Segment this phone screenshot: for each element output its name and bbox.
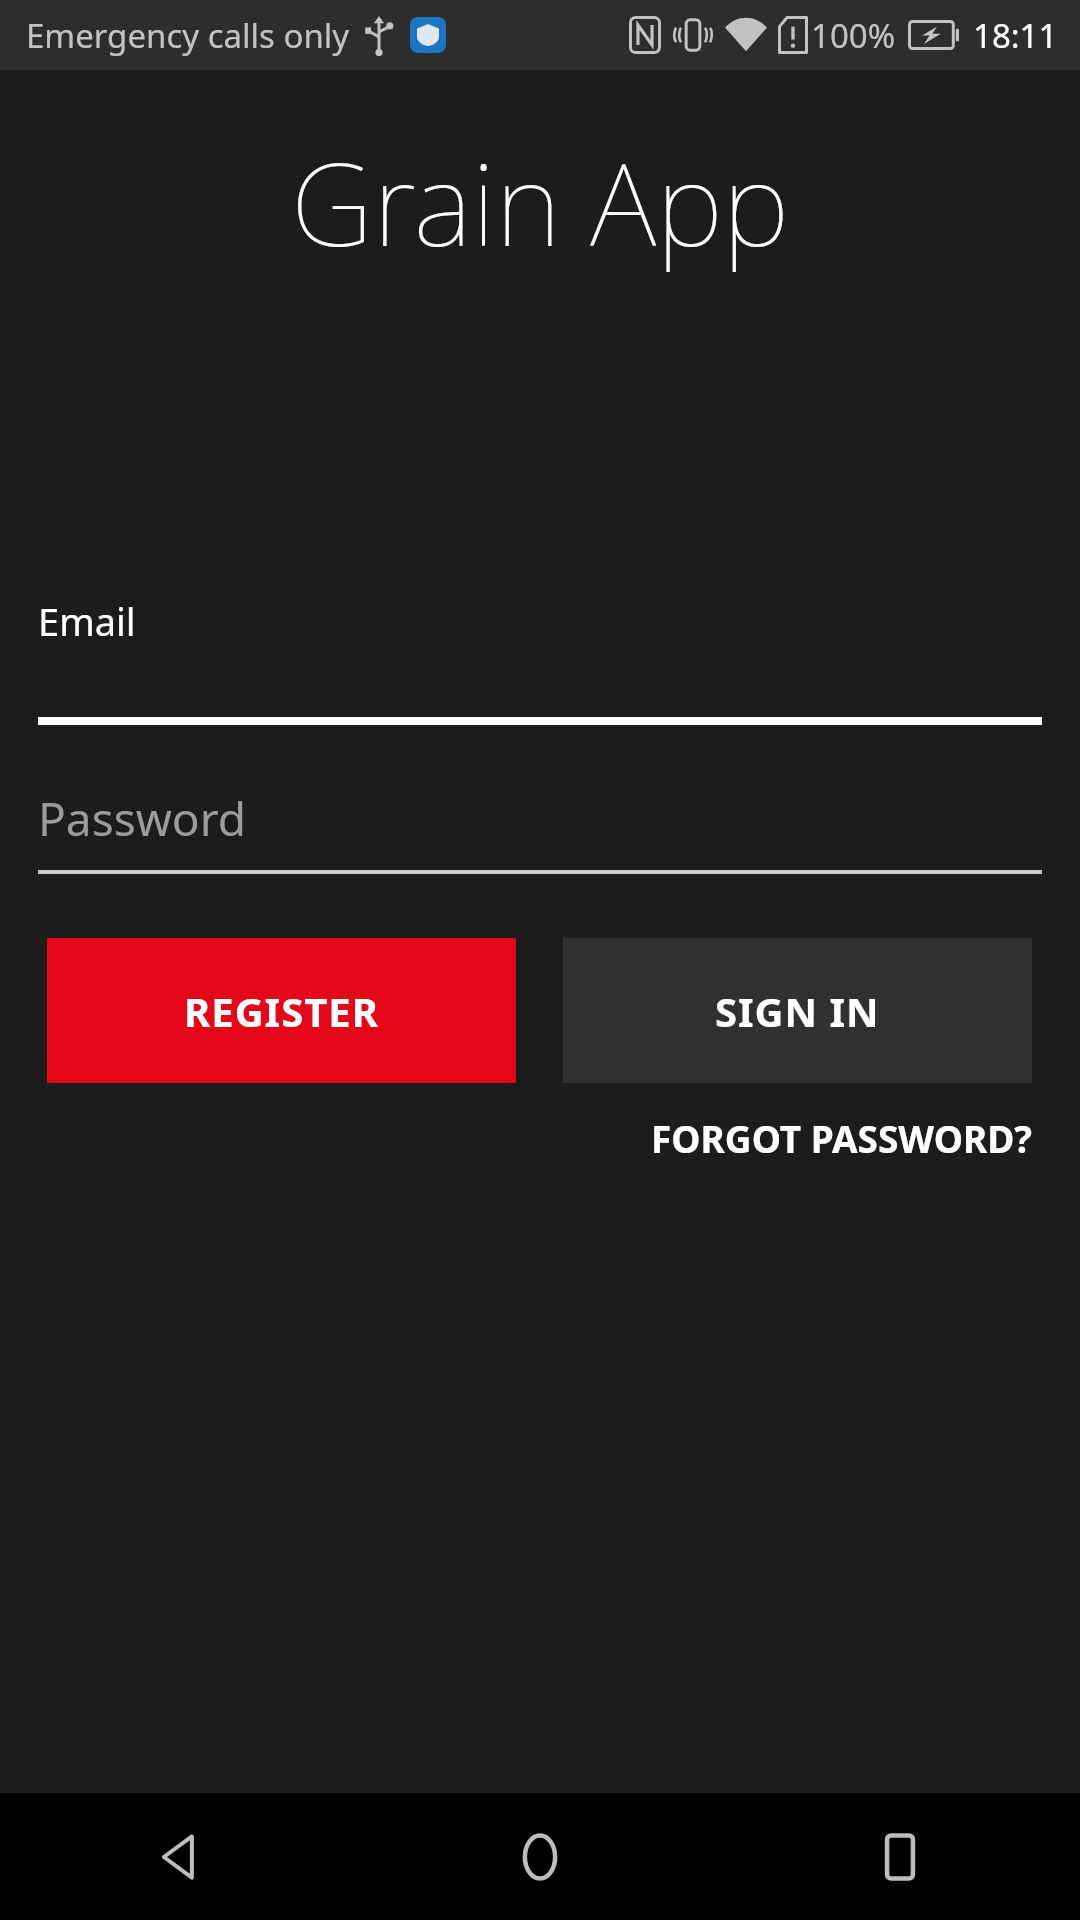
staticText: SIGN IN (715, 984, 880, 1038)
staticText: Grain App (291, 124, 790, 279)
button[interactable]: Home (360, 1793, 720, 1920)
button[interactable]: Password (38, 787, 1042, 874)
button[interactable]: Recents (720, 1793, 1080, 1920)
button[interactable]: FORGOT PASSWORD? (641, 1097, 1042, 1179)
staticText: Email (38, 595, 136, 647)
staticText: REGISTER (184, 984, 379, 1038)
button[interactable]: REGISTER (47, 938, 516, 1083)
staticText: Password (38, 787, 247, 850)
staticText: FORGOT PASSWORD? (651, 1113, 1032, 1163)
button[interactable]: SIGN IN (563, 938, 1032, 1083)
staticText: 100% (811, 13, 896, 58)
staticText: 18:11 (973, 13, 1058, 58)
button[interactable]: Back (0, 1793, 360, 1920)
staticText: Emergency calls only (26, 13, 350, 58)
button[interactable]: Email (38, 595, 1042, 725)
